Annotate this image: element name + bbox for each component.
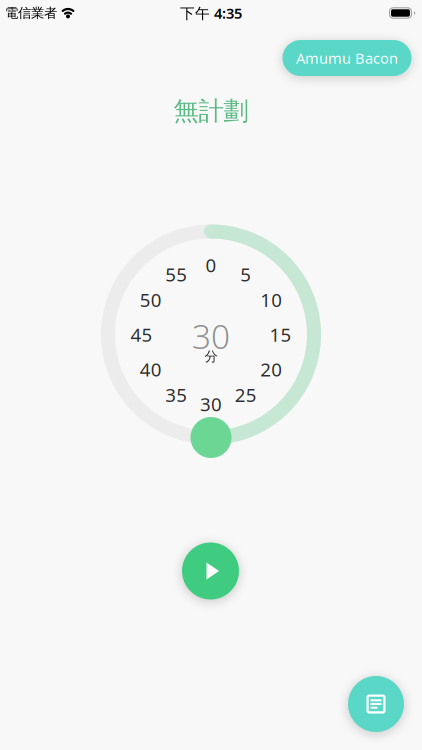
staticText: 下午 4:35 xyxy=(180,3,242,23)
staticText: 分 xyxy=(204,348,217,365)
staticText: 45 xyxy=(130,322,152,347)
button[interactable]: Amumu Bacon xyxy=(282,40,411,76)
staticText: 50 xyxy=(140,287,162,312)
staticText: Amumu Bacon xyxy=(296,48,398,68)
staticText: 30 xyxy=(192,314,230,358)
staticText: 40 xyxy=(140,357,162,382)
button[interactable]: Records xyxy=(348,676,404,732)
staticText: 15 xyxy=(269,322,291,347)
staticText: 5 xyxy=(240,262,251,287)
button[interactable]: Start xyxy=(182,542,239,599)
staticText: 30 xyxy=(200,392,222,416)
staticText: 無計劃 xyxy=(173,95,248,126)
staticText: 10 xyxy=(260,287,282,312)
staticText: 25 xyxy=(235,382,257,407)
staticText: 電信業者 xyxy=(5,5,57,21)
staticText: 35 xyxy=(165,382,187,407)
staticText: 55 xyxy=(165,262,187,287)
button[interactable]: Set minutes xyxy=(190,417,231,458)
staticText: 0 xyxy=(205,253,216,277)
staticText: 20 xyxy=(260,357,282,382)
